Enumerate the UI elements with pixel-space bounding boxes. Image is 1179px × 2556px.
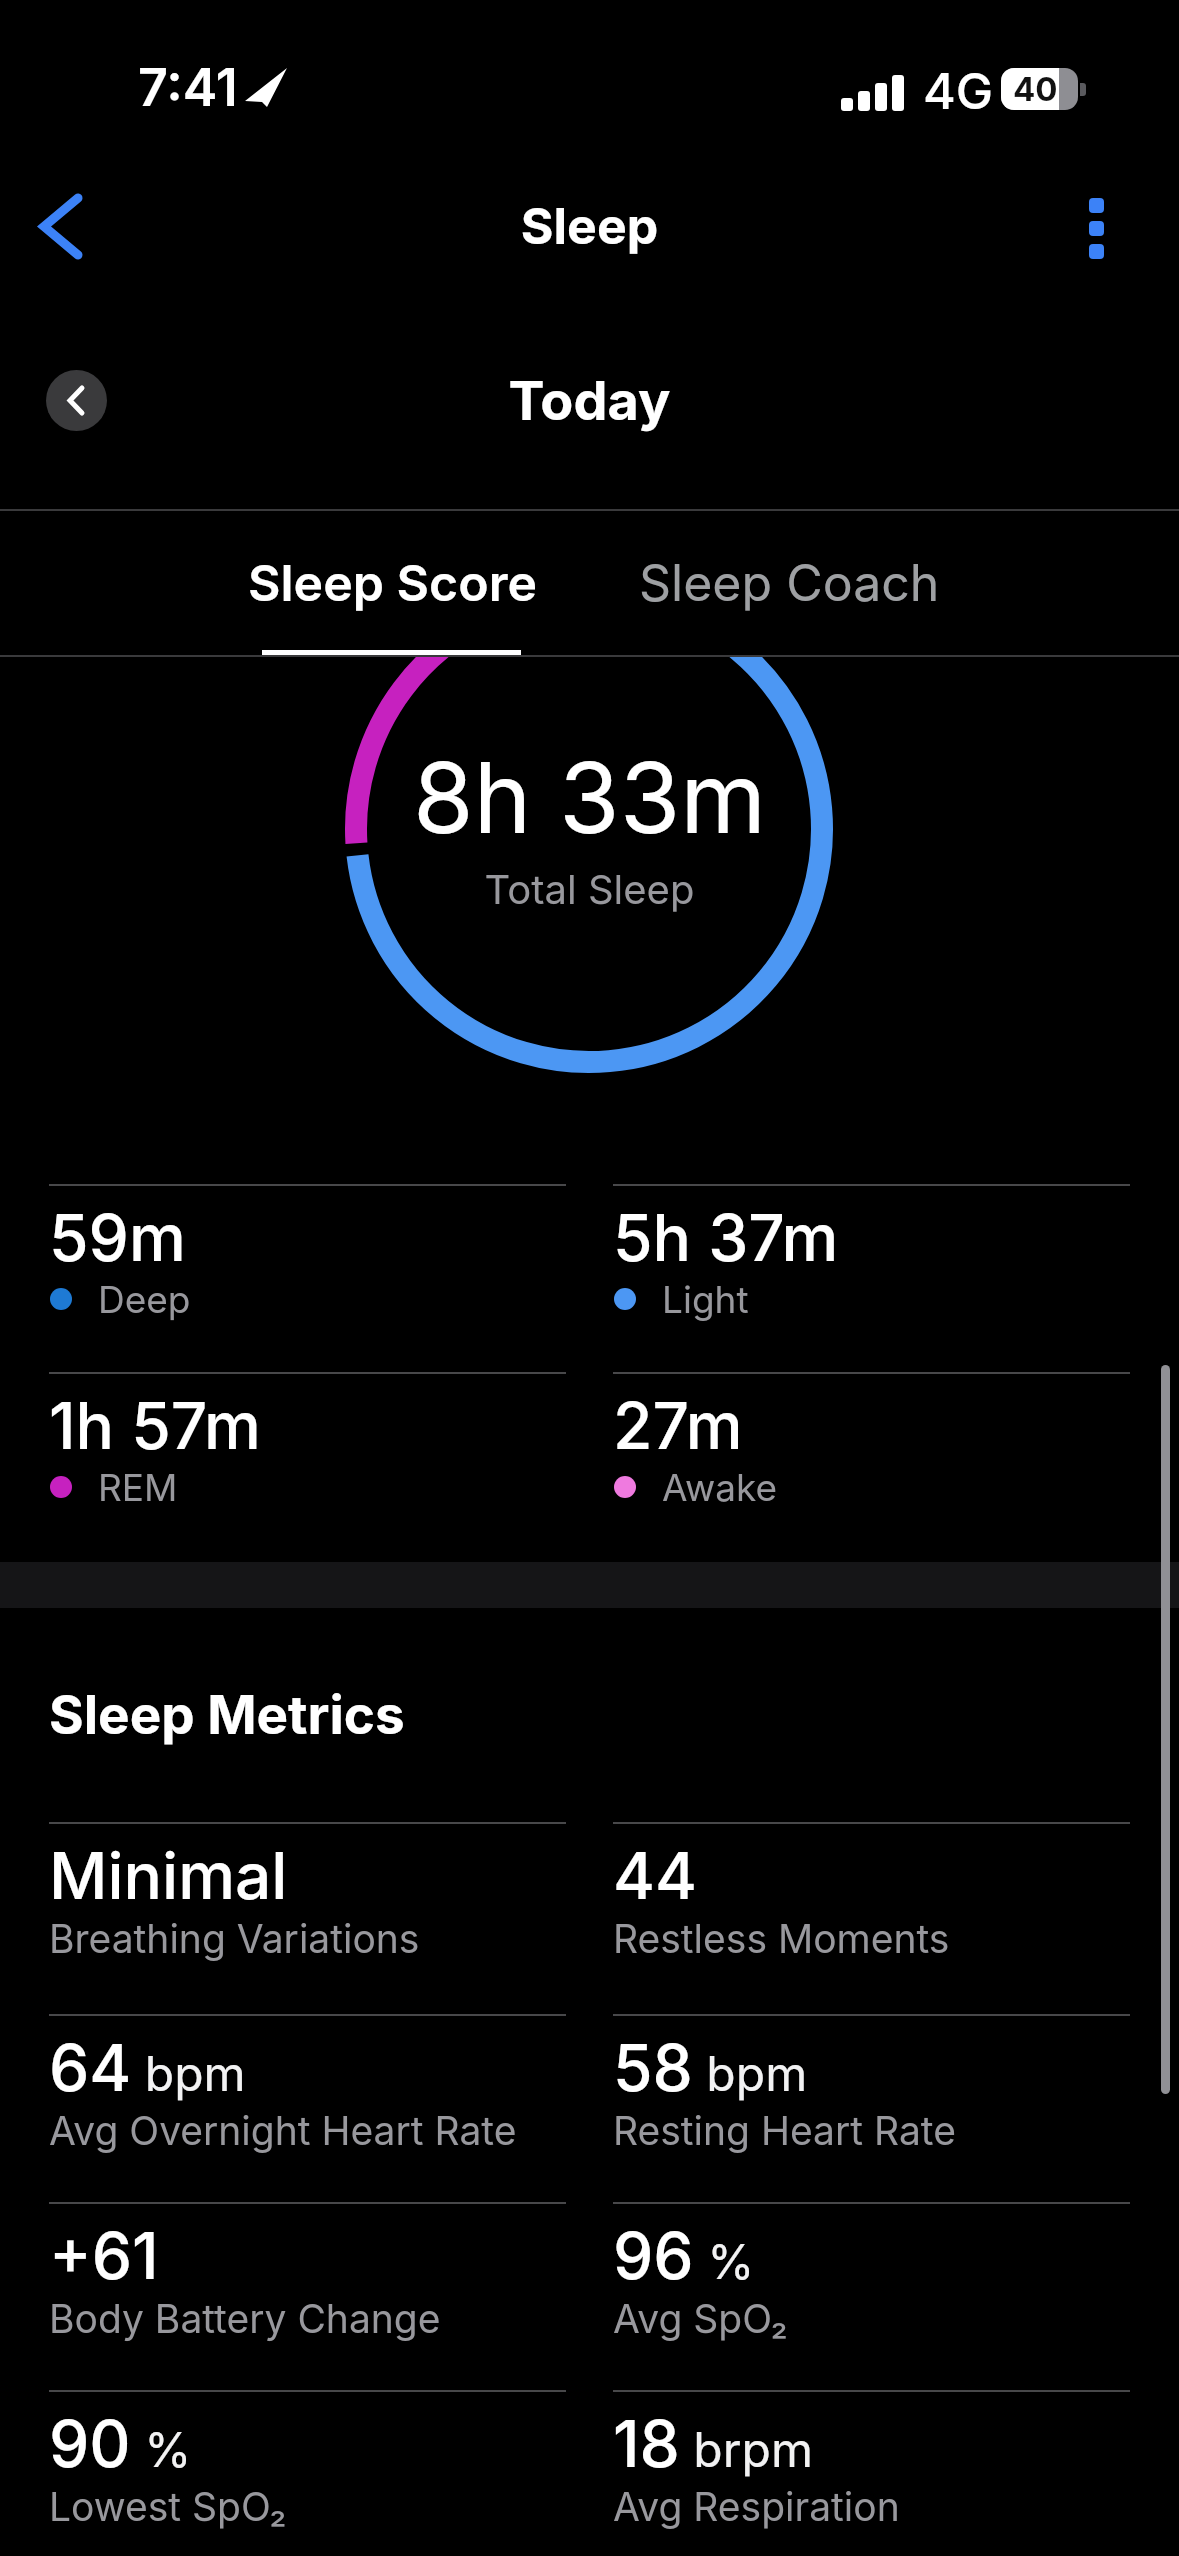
staticText: Deep xyxy=(98,1277,191,1322)
staticText: Restless Moments xyxy=(613,1915,950,1962)
staticText: Resting Heart Rate xyxy=(613,2107,956,2154)
button[interactable]: Sleep Score xyxy=(212,540,572,630)
staticText: Light xyxy=(662,1277,749,1322)
staticText: 8h 33m xyxy=(0,738,1179,857)
staticText: Avg Respiration xyxy=(613,2483,900,2530)
staticText: 40 xyxy=(1013,69,1058,109)
button[interactable] xyxy=(26,188,102,266)
staticText: Avg Overnight Heart Rate xyxy=(49,2107,517,2154)
button[interactable] xyxy=(46,370,107,431)
staticText: 44 xyxy=(613,1837,697,1914)
staticText: Sleep xyxy=(0,196,1179,256)
staticText: Sleep Score xyxy=(248,553,537,613)
staticText: 1h 57m xyxy=(49,1387,261,1464)
staticText: REM xyxy=(98,1465,178,1510)
button[interactable]: Sleep Coach xyxy=(609,540,969,630)
staticText: Total Sleep xyxy=(0,865,1179,913)
staticText: 18 brpm xyxy=(613,2405,813,2482)
button[interactable] xyxy=(1075,190,1119,266)
staticText: +61 xyxy=(49,2217,159,2294)
staticText: 90 % xyxy=(49,2405,192,2482)
staticText: Sleep Coach xyxy=(639,553,940,613)
staticText: Awake xyxy=(662,1465,778,1510)
staticText: Minimal xyxy=(49,1837,288,1914)
staticText: Breathing Variations xyxy=(49,1915,420,1962)
staticText: 27m xyxy=(613,1387,743,1464)
staticText: Body Battery Change xyxy=(49,2295,441,2342)
staticText: Today xyxy=(0,368,1179,433)
staticText: 64 bpm xyxy=(49,2029,246,2106)
staticText: Sleep Metrics xyxy=(49,1683,405,1747)
staticText: Lowest SpO₂ xyxy=(49,2483,287,2530)
staticText: 59m xyxy=(49,1199,186,1276)
staticText: 58 bpm xyxy=(613,2029,808,2106)
staticText: 96 % xyxy=(613,2217,755,2294)
staticText: Avg SpO₂ xyxy=(613,2295,788,2342)
staticText: 5h 37m xyxy=(613,1199,839,1276)
staticText: 4G xyxy=(923,61,994,121)
staticText: 7:41 xyxy=(138,56,238,119)
